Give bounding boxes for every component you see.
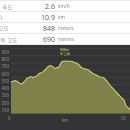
button[interactable]: 고도 (0, 23, 130, 34)
staticText: km (62, 117, 69, 123)
staticText: 거리 (0, 14, 3, 21)
staticText: 700 (0, 63, 9, 69)
staticText: 평균 속도 (0, 3, 13, 10)
staticText: 600 (0, 71, 9, 77)
staticText: 848m (60, 47, 69, 52)
staticText: 10 (119, 115, 127, 121)
staticText: 10.9 (0, 13, 55, 23)
staticText: km (58, 14, 66, 21)
staticText: 800 (0, 56, 9, 62)
staticText: 300 (0, 92, 9, 98)
staticText: 400 (0, 85, 9, 91)
staticText: 획득 고도 (0, 36, 18, 43)
staticText: 690 (0, 35, 55, 45)
button[interactable]: 획득 고도 (0, 34, 130, 45)
staticText: meters (58, 25, 74, 32)
button[interactable]: 거리 (0, 12, 130, 23)
staticText: meters (58, 36, 74, 43)
staticText: 900 (0, 49, 9, 55)
staticText: 2.6 (0, 2, 55, 12)
staticText: 848 (0, 24, 55, 34)
staticText: 100 (0, 107, 9, 113)
staticText: km/h (58, 3, 70, 10)
staticText: 최고점 (60, 52, 71, 56)
staticText: 500 (0, 78, 9, 84)
staticText: 200 (0, 100, 9, 106)
staticText: 0 (8, 115, 11, 121)
button[interactable]: 평균 속도 (0, 1, 130, 12)
staticText: 고도 (0, 25, 9, 32)
